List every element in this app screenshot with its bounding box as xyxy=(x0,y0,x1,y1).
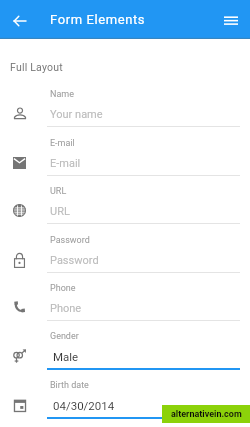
staticText: E-mail xyxy=(50,138,75,149)
staticText: Password xyxy=(50,235,90,246)
button[interactable]: E-mail xyxy=(0,129,250,177)
staticText: Form Elements xyxy=(50,12,146,27)
button[interactable]: Menu xyxy=(221,11,241,31)
button[interactable]: Password xyxy=(0,226,250,274)
button[interactable]: Phone xyxy=(0,274,250,322)
staticText: alternativein.com xyxy=(171,409,242,420)
staticText: Phone xyxy=(50,302,82,315)
staticText: Password xyxy=(50,254,99,267)
button[interactable]: Gender xyxy=(0,322,250,370)
button[interactable]: Name xyxy=(0,80,250,128)
staticText: Name xyxy=(50,89,74,100)
staticText: Phone xyxy=(50,283,76,294)
button[interactable]: Birth date xyxy=(0,371,250,419)
staticText: URL xyxy=(50,205,70,218)
staticText: URL xyxy=(50,186,67,197)
staticText: Full Layout xyxy=(10,61,63,73)
staticText: Male xyxy=(53,350,79,363)
staticText: Your name xyxy=(50,108,103,121)
button[interactable]: Back xyxy=(8,9,32,33)
staticText: E-mail xyxy=(50,157,81,170)
staticText: Gender xyxy=(50,331,79,342)
staticText: Birth date xyxy=(50,380,89,391)
staticText: 04/30/2014 xyxy=(53,399,115,412)
button[interactable]: URL xyxy=(0,177,250,225)
